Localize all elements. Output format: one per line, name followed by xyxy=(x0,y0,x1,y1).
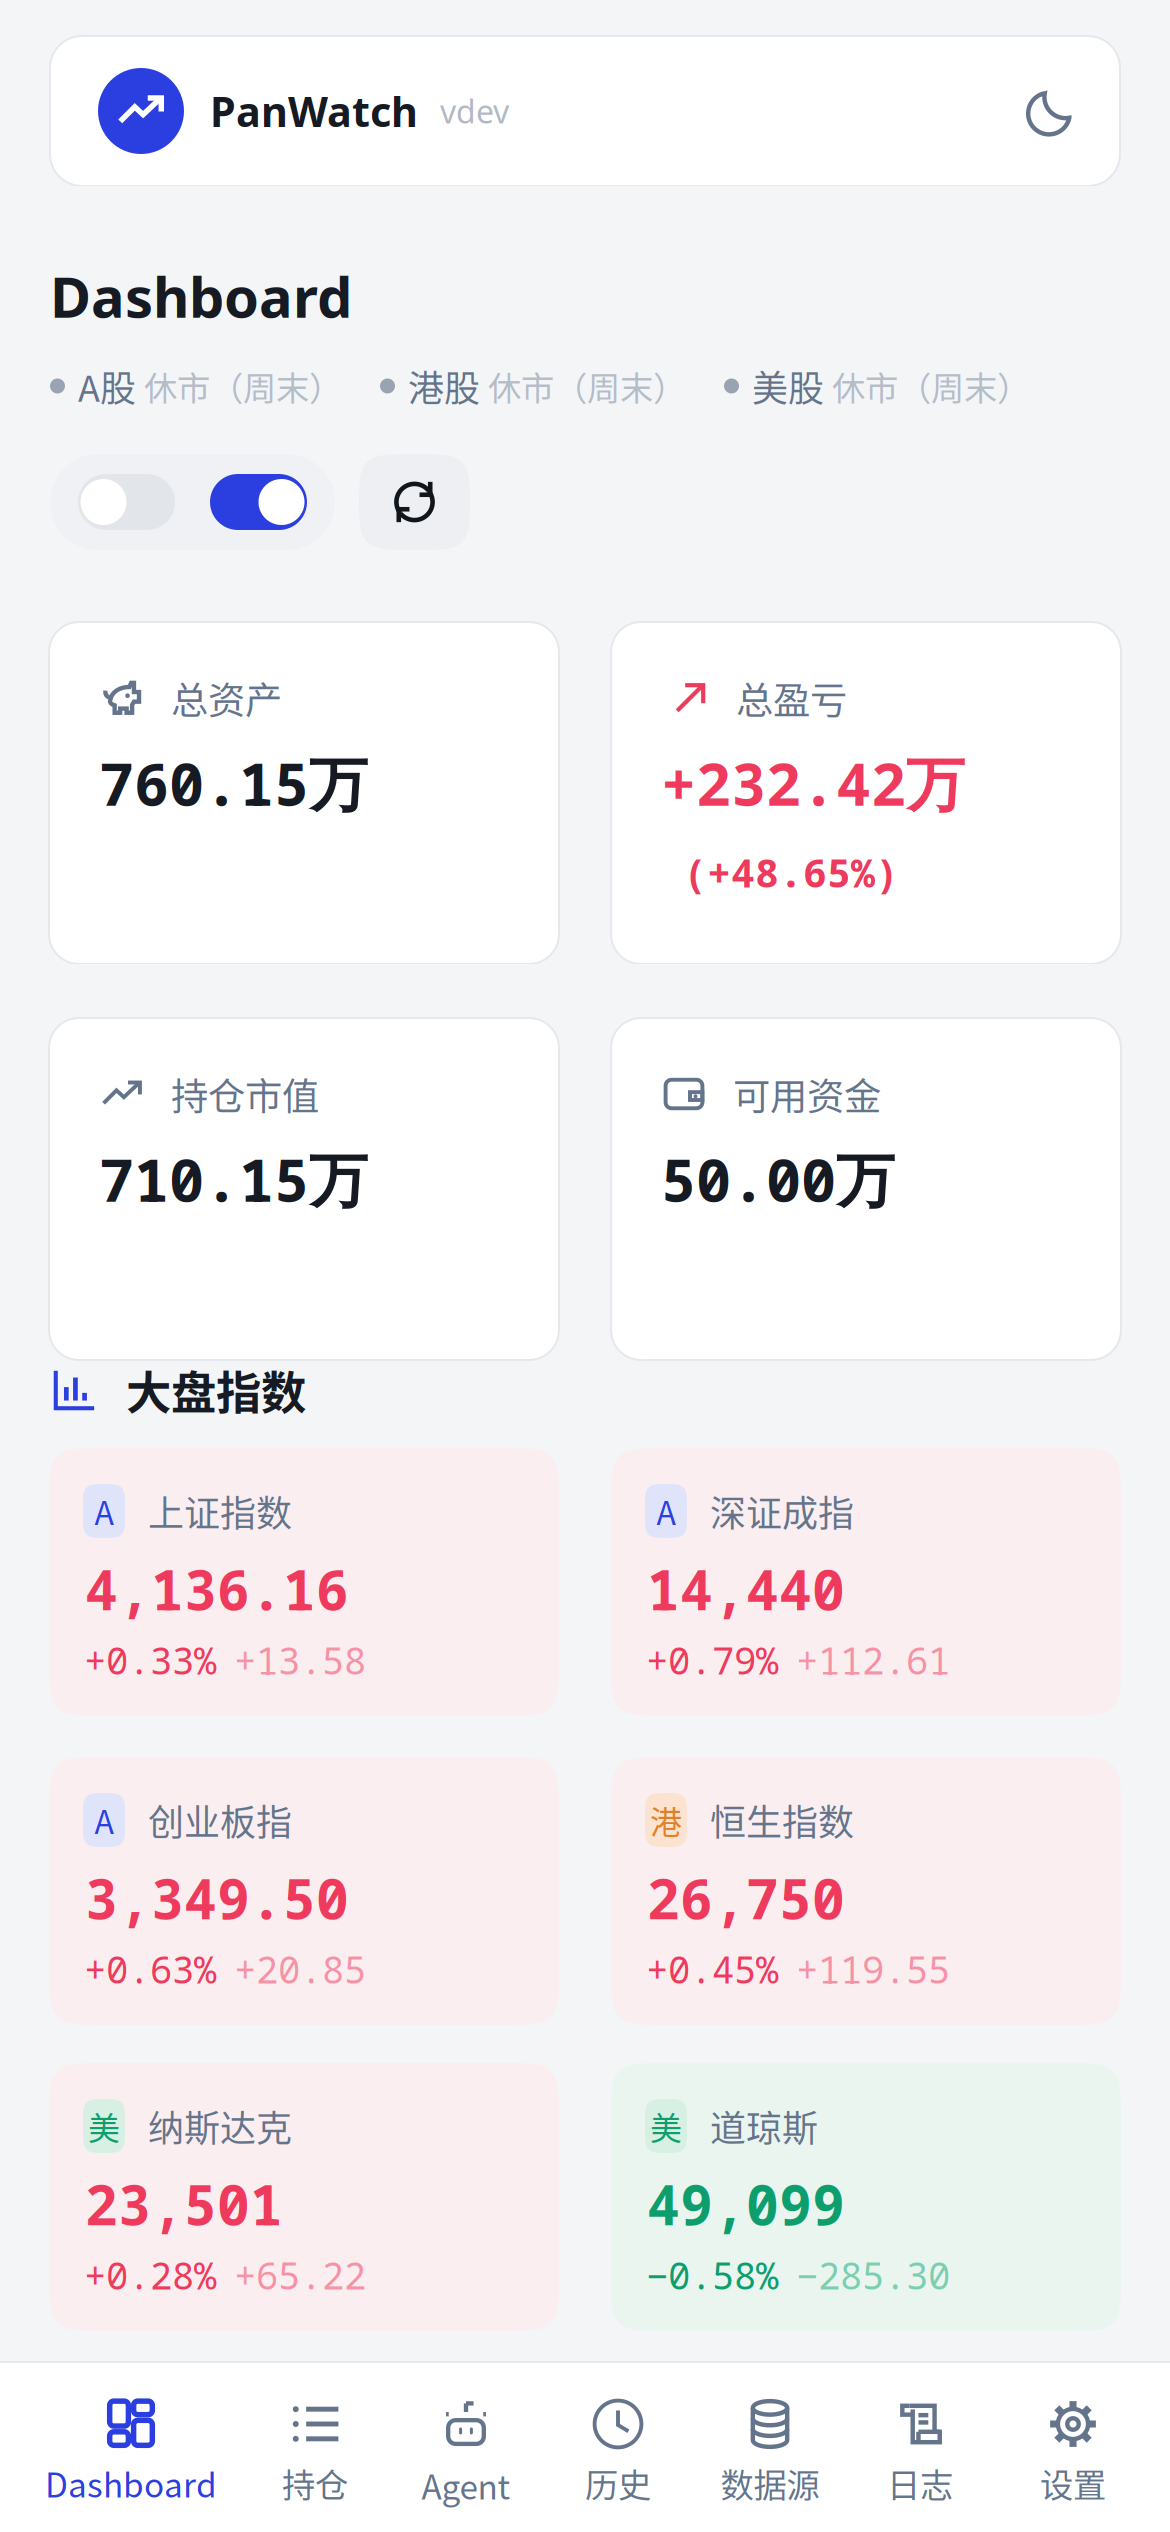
staticText: 港 xyxy=(650,1797,682,1843)
staticText: PanWatch xyxy=(210,83,418,139)
staticText: 道琼斯 xyxy=(710,2100,818,2152)
staticText: A xyxy=(94,1797,113,1843)
staticText: 历史 xyxy=(585,2459,651,2507)
staticText: 23,501 xyxy=(85,2167,283,2241)
staticText: 可用资金 xyxy=(733,1067,881,1121)
staticText: 设置 xyxy=(1040,2459,1106,2507)
staticText: 数据源 xyxy=(720,2459,819,2507)
staticText: +0.28% xyxy=(84,2250,216,2300)
staticText: +0.63% xyxy=(84,1944,216,1994)
staticText: +13.58 xyxy=(234,1635,366,1685)
staticText: 总资产 xyxy=(171,671,282,725)
staticText: 49,099 xyxy=(647,2167,845,2241)
staticText: 14,440 xyxy=(647,1552,845,1626)
staticText: vdev xyxy=(440,89,509,133)
button[interactable]: 设置 xyxy=(998,2361,1148,2532)
staticText: 港股 xyxy=(408,360,480,412)
button[interactable]: Dashboard xyxy=(26,2361,236,2532)
button[interactable]: 历史 xyxy=(538,2361,698,2532)
staticText: 持仓市值 xyxy=(171,1067,319,1121)
staticText: 26,750 xyxy=(647,1861,845,1935)
staticText: A xyxy=(656,1488,675,1534)
staticText: 持仓 xyxy=(282,2459,348,2507)
button[interactable]: Agent xyxy=(394,2361,538,2532)
staticText: 大盘指数 xyxy=(126,1357,306,1423)
button[interactable]: 持仓 xyxy=(236,2361,394,2532)
staticText: 纳斯达克 xyxy=(148,2100,292,2152)
staticText: +0.33% xyxy=(84,1635,216,1685)
staticText: −285.30 xyxy=(796,2250,950,2300)
button[interactable]: 日志 xyxy=(842,2361,998,2532)
staticText: A股 xyxy=(78,360,136,412)
staticText: −0.58% xyxy=(646,2250,778,2300)
staticText: 上证指数 xyxy=(148,1485,292,1537)
staticText: 休市（周末） xyxy=(832,362,1030,410)
staticText: 恒生指数 xyxy=(710,1794,854,1846)
staticText: 美 xyxy=(88,2103,120,2149)
staticText: +232.42万 xyxy=(661,743,965,823)
staticText: 日志 xyxy=(887,2459,953,2507)
staticText: Dashboard xyxy=(45,2459,217,2507)
staticText: +0.45% xyxy=(646,1944,778,1994)
staticText: +119.55 xyxy=(796,1944,950,1994)
staticText: +65.22 xyxy=(234,2250,366,2300)
staticText: 760.15万 xyxy=(99,743,368,823)
staticText: 总盈亏 xyxy=(736,671,847,725)
staticText: (+48.65%) xyxy=(683,845,899,899)
button[interactable]: Refresh xyxy=(359,454,470,550)
button[interactable]: PanWatch xyxy=(50,36,1120,186)
staticText: 休市（周末） xyxy=(488,362,686,410)
staticText: 3,349.50 xyxy=(85,1861,349,1935)
staticText: 美 xyxy=(650,2103,682,2149)
button[interactable]: Live data xyxy=(210,474,307,530)
staticText: 深证成指 xyxy=(710,1485,854,1537)
staticText: +20.85 xyxy=(234,1944,366,1994)
staticText: 50.00万 xyxy=(661,1139,895,1219)
button[interactable]: Auto refresh xyxy=(78,474,175,530)
staticText: 创业板指 xyxy=(148,1794,292,1846)
staticText: 休市（周末） xyxy=(144,362,342,410)
staticText: +112.61 xyxy=(796,1635,950,1685)
button[interactable]: 数据源 xyxy=(698,2361,842,2532)
staticText: 710.15万 xyxy=(99,1139,368,1219)
staticText: Dashboard xyxy=(50,258,352,334)
staticText: Agent xyxy=(421,2461,510,2509)
staticText: A xyxy=(94,1488,113,1534)
staticText: +0.79% xyxy=(646,1635,778,1685)
staticText: 美股 xyxy=(752,360,824,412)
staticText: 4,136.16 xyxy=(85,1552,349,1626)
